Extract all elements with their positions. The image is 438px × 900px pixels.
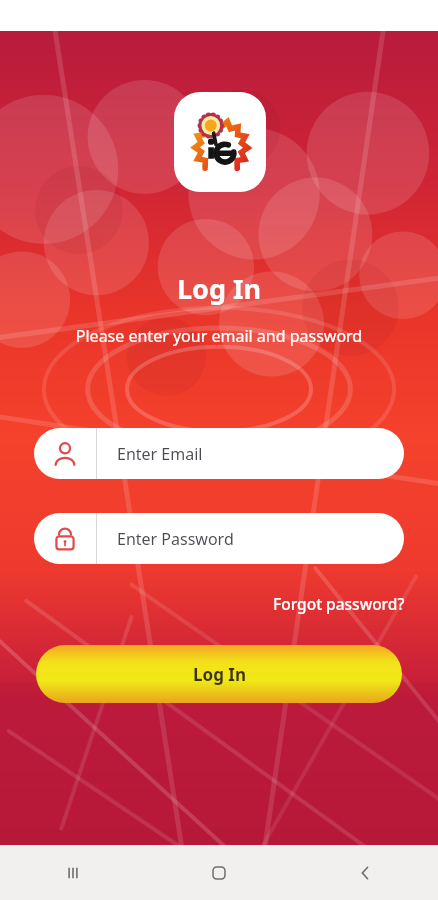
- staticText: Enter Email: [117, 443, 203, 465]
- button[interactable]: Password: [34, 513, 404, 564]
- staticText: Log In: [193, 663, 246, 686]
- staticText: Log In: [0, 270, 438, 307]
- staticText: Please enter your email and password: [0, 325, 438, 347]
- button[interactable]: Email: [34, 428, 404, 479]
- button[interactable]: Forgot password?: [271, 589, 407, 618]
- staticText: Enter Password: [117, 528, 234, 550]
- staticText: Forgot password?: [273, 593, 405, 614]
- button[interactable]: Home: [146, 845, 292, 900]
- button[interactable]: Back: [292, 845, 438, 900]
- button[interactable]: Log In: [36, 645, 402, 703]
- button[interactable]: Recents: [0, 845, 146, 900]
